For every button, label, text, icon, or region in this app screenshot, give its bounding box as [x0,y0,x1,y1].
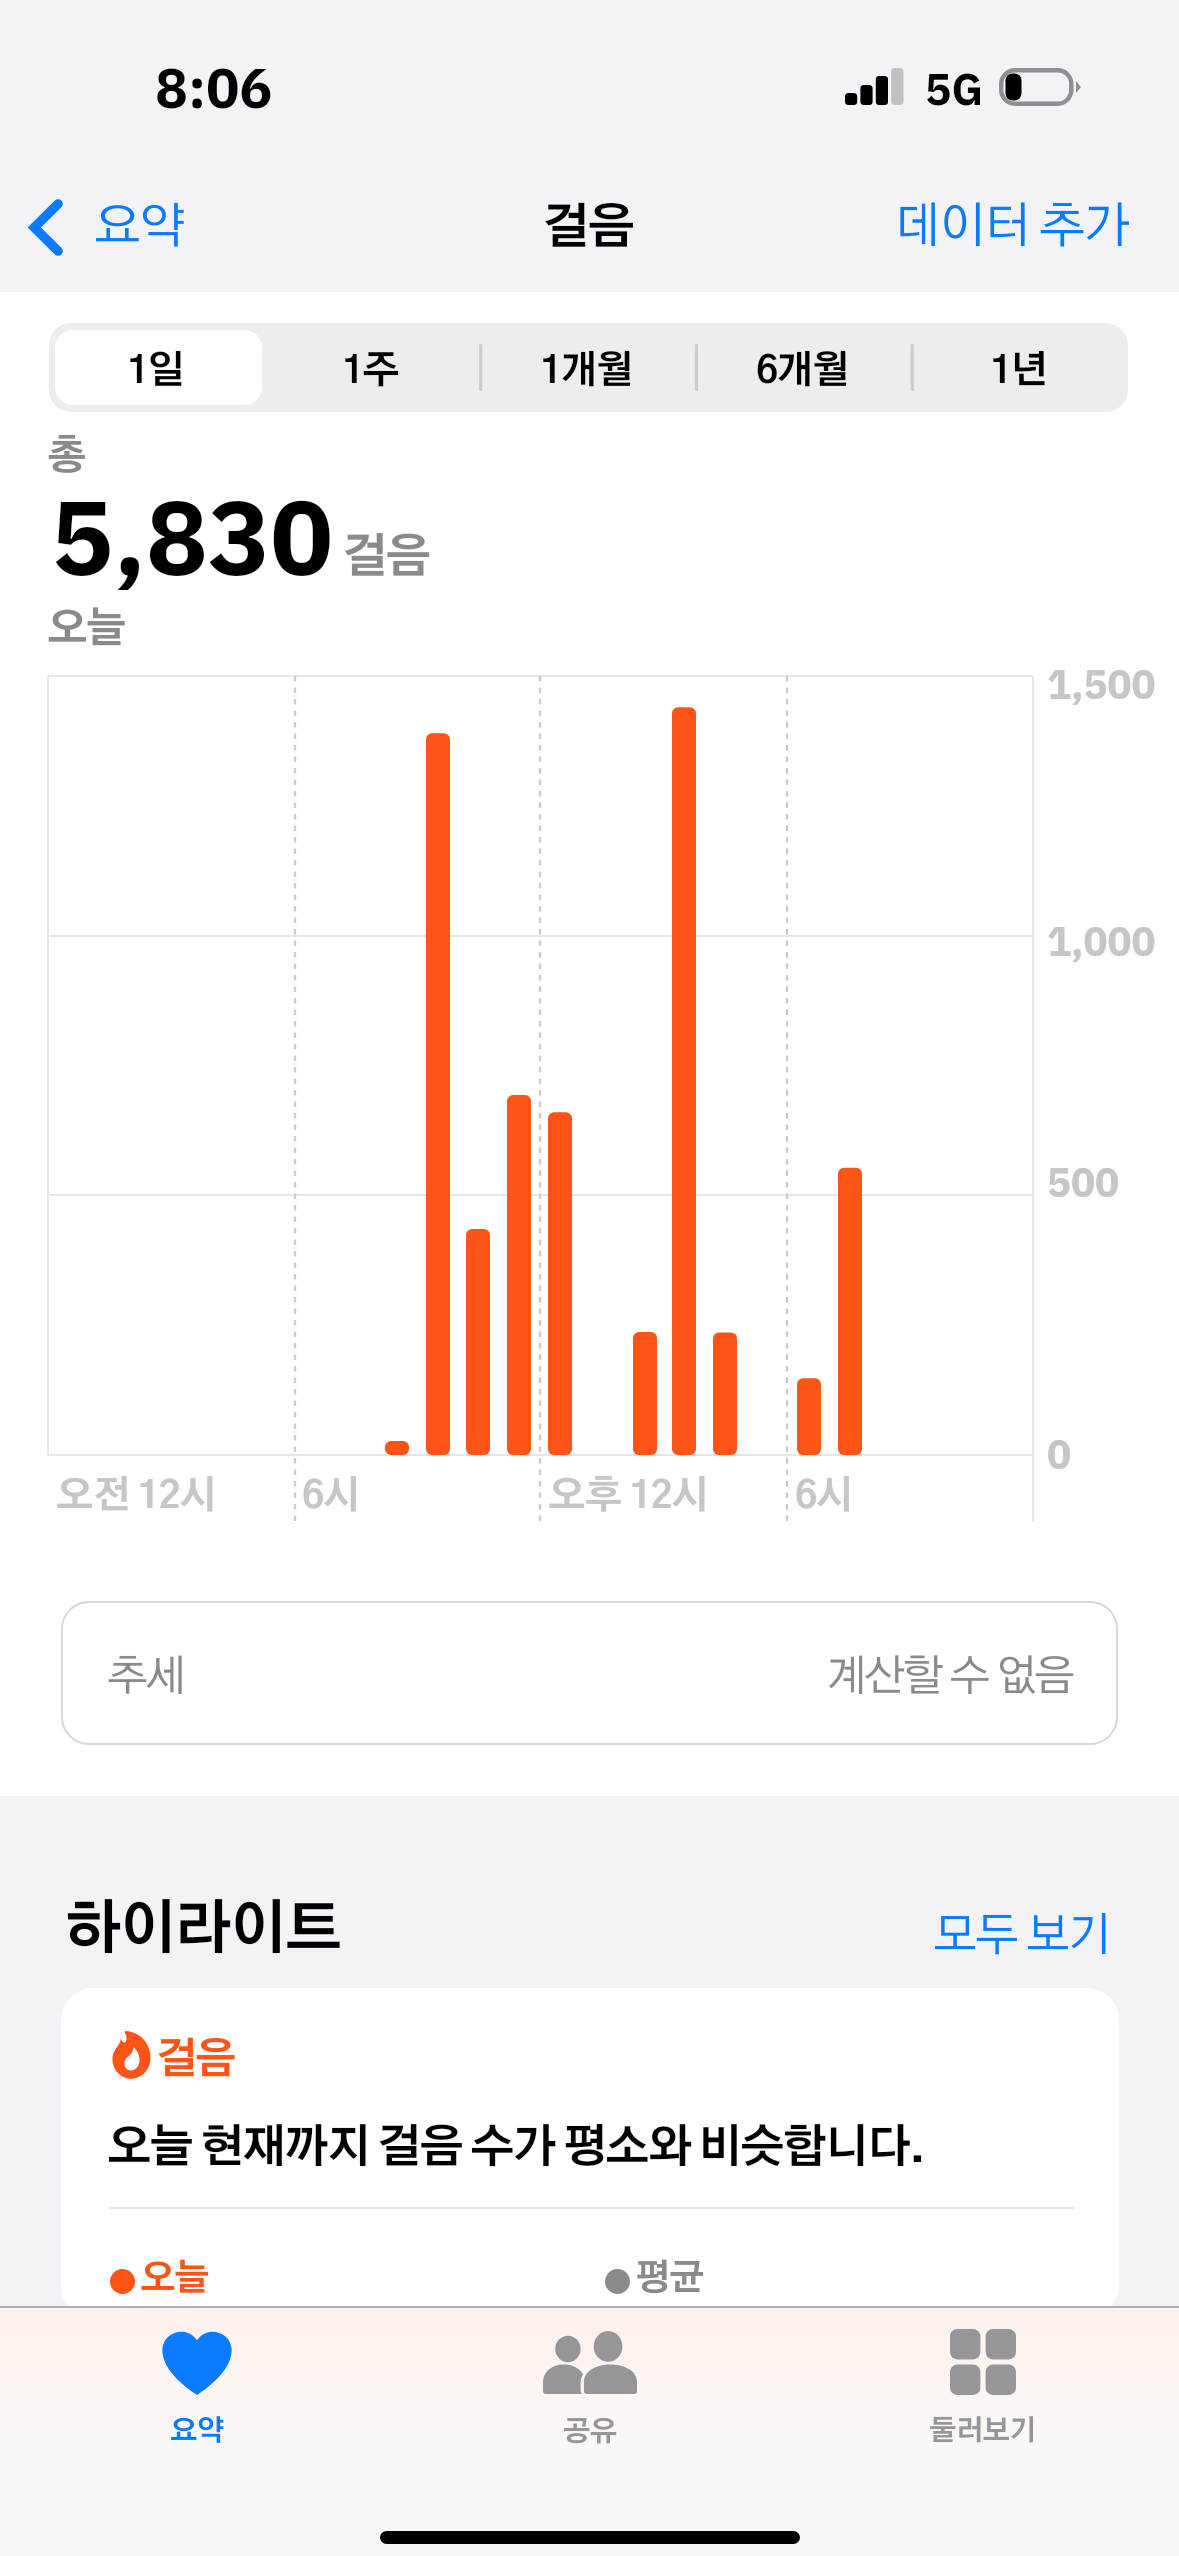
button[interactable]: Browse [786,2306,1179,2481]
staticText: 오늘 [47,609,125,650]
staticText: 오늘 현재까지 걸음 수가 평소와 비슷합니다. [107,2126,924,2171]
button[interactable]: 데이터 추가 [882,191,1141,263]
staticText: 1주 [342,353,398,391]
staticText: 6개월 [756,353,848,391]
staticText: 6시 [302,1478,360,1516]
button[interactable]: 모두 보기 [925,1909,1119,1963]
staticText: 걸음 [342,535,430,581]
staticText: 요약 [170,2418,224,2446]
staticText: 1개월 [540,353,632,391]
staticText: 공유 [563,2419,617,2447]
staticText: 걸음 [156,2039,234,2081]
staticText: 평균 [635,2261,704,2297]
button[interactable]: 요약 [14,191,198,263]
button[interactable]: Summary [0,2306,393,2481]
staticText: 계산할 수 없음 [826,1656,1073,1699]
staticText: 요약 [94,203,184,252]
button[interactable]: 걸음 [61,1988,1119,2318]
button[interactable]: 1개월 [480,323,696,412]
staticText: 둘러보기 [929,2418,1036,2446]
button[interactable]: 추세 [61,1601,1118,1745]
button[interactable]: 6개월 [696,323,912,412]
staticText: 총 [47,437,87,477]
button[interactable]: 1년 [912,323,1128,412]
button[interactable]: 1일 [49,323,264,412]
staticText: 0 [1047,1426,1071,1486]
button[interactable]: 1주 [264,323,480,412]
staticText: 500 [1047,1154,1119,1214]
staticText: 오전 12시 [56,1478,217,1516]
staticText: 모두 보기 [933,1913,1111,1959]
staticText: 오후 12시 [548,1478,709,1516]
staticText: 1년 [990,353,1046,391]
staticText: 6시 [795,1478,853,1516]
button[interactable]: Sharing [393,2306,786,2481]
staticText: 8:06 [155,48,273,131]
staticText: 걸음 [0,205,1177,253]
staticText: 5G [925,57,984,123]
staticText: 5,830 [51,462,333,618]
staticText: 추세 [107,1656,185,1699]
staticText: 오늘 [140,2261,209,2297]
staticText: 하이라이트 [64,1902,340,1960]
staticText: 데이터 추가 [894,203,1129,252]
staticText: 1,000 [1047,913,1156,973]
staticText: 1,500 [1047,656,1156,716]
staticText: 1일 [127,353,183,391]
